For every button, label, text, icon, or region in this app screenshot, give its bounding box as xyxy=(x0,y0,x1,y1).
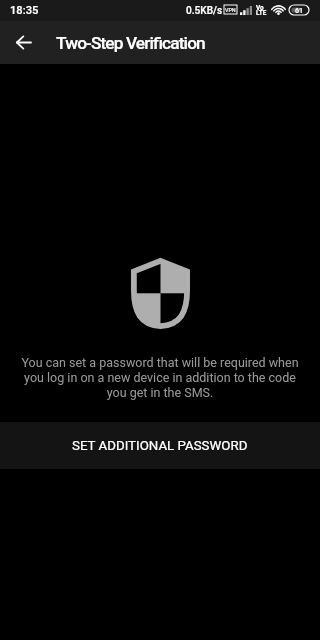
button[interactable]: SET ADDITIONAL PASSWORD xyxy=(0,422,320,469)
staticText: Two-Step Verification xyxy=(56,33,205,53)
button[interactable]: Back xyxy=(8,21,38,64)
staticText: 61 xyxy=(295,6,304,14)
staticText: 18:35 xyxy=(10,4,39,17)
staticText: You can set a password that will be requ… xyxy=(20,355,300,400)
staticText: VPN xyxy=(225,7,236,13)
staticText: Vo xyxy=(256,4,264,12)
staticText: SET ADDITIONAL PASSWORD xyxy=(72,438,248,454)
staticText: LTE xyxy=(256,9,267,17)
staticText: 0.5KB/s xyxy=(186,5,223,17)
